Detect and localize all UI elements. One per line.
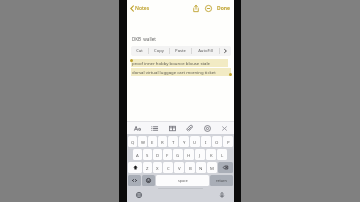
- button[interactable]: R: [158, 136, 167, 147]
- button[interactable]: F: [163, 149, 172, 160]
- staticText: O: [215, 139, 219, 145]
- button[interactable]: L: [217, 149, 227, 160]
- staticText: G: [176, 152, 180, 158]
- button[interactable]: J: [195, 149, 205, 160]
- button[interactable]: return: [210, 175, 233, 186]
- button[interactable]: Cut: [131, 46, 148, 56]
- staticText: R: [161, 139, 164, 145]
- button[interactable]: Z: [143, 162, 152, 173]
- staticText: T: [172, 139, 175, 145]
- staticText: X: [156, 165, 159, 171]
- button[interactable]: V: [174, 162, 184, 173]
- staticText: S: [146, 152, 149, 158]
- staticText: Q: [131, 139, 135, 145]
- button[interactable]: G: [173, 149, 183, 160]
- button[interactable]: D: [153, 149, 162, 160]
- staticText: K: [210, 152, 213, 158]
- button[interactable]: B: [185, 162, 195, 173]
- button[interactable]: I: [201, 136, 211, 147]
- button[interactable]: E: [148, 136, 157, 147]
- staticText: Z: [146, 165, 149, 171]
- button[interactable]: Attach: [183, 122, 195, 134]
- staticText: Notes: [135, 5, 150, 12]
- button[interactable]: Checklist: [148, 122, 160, 134]
- staticText: DKB wallet: [132, 36, 156, 42]
- staticText: N: [199, 165, 203, 171]
- button[interactable]: Share: [190, 3, 201, 14]
- button[interactable]: O: [212, 136, 222, 147]
- staticText: space: [178, 178, 188, 183]
- button[interactable]: S: [143, 149, 152, 160]
- button[interactable]: A: [133, 149, 142, 160]
- staticText: U: [193, 139, 197, 145]
- staticText: Done: [217, 5, 230, 12]
- button[interactable]: C: [163, 162, 173, 173]
- button[interactable]: Paste: [170, 46, 191, 56]
- staticText: AutoFill: [198, 48, 213, 54]
- staticText: L: [221, 152, 224, 158]
- button[interactable]: X: [153, 162, 162, 173]
- staticText: proof inner hobby bounce blouse stale: [132, 60, 210, 66]
- button[interactable]: Table: [166, 122, 178, 134]
- staticText: H: [187, 152, 191, 158]
- button[interactable]: More options: [203, 3, 214, 14]
- button[interactable]: Text format: [131, 122, 143, 134]
- staticText: M: [210, 165, 214, 171]
- button[interactable]: K: [206, 149, 216, 160]
- button[interactable]: Notes: [129, 3, 151, 14]
- button[interactable]: Q: [128, 136, 137, 147]
- button[interactable]: P: [223, 136, 233, 147]
- button[interactable]: U: [190, 136, 200, 147]
- button[interactable]: Emoji: [142, 175, 155, 186]
- button[interactable]: Camera: [201, 122, 213, 134]
- button[interactable]: N: [196, 162, 206, 173]
- staticText: V: [178, 165, 181, 171]
- button[interactable]: Shift: [128, 162, 142, 173]
- staticText: Y: [183, 139, 186, 145]
- staticText: C: [167, 165, 170, 171]
- button[interactable]: More: [220, 46, 231, 56]
- staticText: J: [199, 152, 201, 158]
- button[interactable]: H: [184, 149, 194, 160]
- button[interactable]: T: [168, 136, 178, 147]
- staticText: F: [166, 152, 169, 158]
- button[interactable]: AutoFill: [192, 46, 219, 56]
- staticText: I: [205, 139, 207, 145]
- staticText: dorsal virtual luggage cart morning tick…: [132, 69, 216, 75]
- button[interactable]: Dictation: [218, 191, 226, 199]
- button[interactable]: Done: [215, 2, 232, 15]
- staticText: P: [227, 139, 230, 145]
- button[interactable]: Copy: [149, 46, 169, 56]
- button[interactable]: M: [207, 162, 217, 173]
- button[interactable]: Numbers: [128, 175, 141, 186]
- button[interactable]: Globe: [135, 191, 143, 199]
- staticText: B: [189, 165, 192, 171]
- staticText: E: [151, 139, 154, 145]
- button[interactable]: space: [156, 175, 209, 186]
- staticText: Cut: [136, 48, 143, 54]
- staticText: Paste: [175, 48, 186, 54]
- button[interactable]: W: [138, 136, 147, 147]
- staticText: W: [141, 139, 145, 145]
- button[interactable]: Y: [179, 136, 189, 147]
- staticText: Copy: [154, 48, 164, 54]
- staticText: A: [136, 152, 139, 158]
- button[interactable]: Backspace: [218, 162, 233, 173]
- staticText: D: [156, 152, 160, 158]
- button[interactable]: Close keyboard: [218, 122, 230, 134]
- staticText: return: [216, 178, 227, 183]
